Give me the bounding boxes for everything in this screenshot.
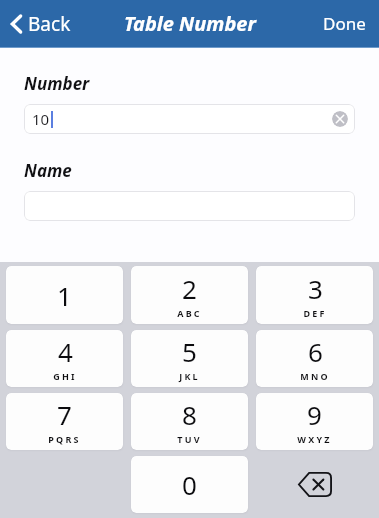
staticText: MNO	[300, 370, 330, 382]
button[interactable]: Back	[7, 7, 74, 41]
staticText: JKL	[179, 370, 200, 382]
staticText: 3	[308, 271, 323, 306]
button[interactable]: 4	[6, 330, 123, 387]
button[interactable]: Clear text	[332, 111, 348, 127]
staticText: 2	[182, 271, 197, 306]
button[interactable]: 8	[131, 393, 248, 450]
staticText: 7	[57, 397, 72, 432]
button[interactable]: 6	[256, 330, 373, 387]
staticText: DEF	[303, 307, 327, 319]
staticText: Name	[24, 159, 72, 182]
staticText: ABC	[177, 307, 202, 319]
staticText: 6	[308, 334, 323, 369]
staticText: WXYZ	[297, 433, 332, 445]
staticText: Number	[24, 72, 90, 95]
staticText: 5	[182, 334, 197, 369]
staticText: 4	[58, 334, 73, 369]
staticText: Back	[28, 11, 71, 37]
button[interactable]: 2	[131, 266, 248, 324]
button[interactable]: 7	[6, 393, 123, 450]
staticText: GHI	[53, 370, 77, 382]
staticText: 1	[57, 278, 72, 313]
staticText: PQRS	[48, 433, 81, 445]
button[interactable]: 5	[131, 330, 248, 387]
staticText: 9	[307, 397, 322, 432]
button[interactable]: Done	[319, 8, 370, 39]
staticText: Table Number	[124, 10, 256, 37]
button[interactable]	[24, 191, 355, 221]
staticText: 8	[182, 397, 197, 432]
staticText: 10	[32, 109, 50, 129]
button[interactable]: 3	[256, 266, 373, 324]
staticText: Done	[323, 12, 366, 35]
button[interactable]: 9	[256, 393, 373, 450]
button[interactable]: 0	[131, 456, 248, 513]
button[interactable]: Backspace	[256, 456, 373, 513]
button[interactable]: 1	[6, 266, 123, 324]
button[interactable]: 10	[24, 104, 355, 134]
staticText: 0	[182, 467, 197, 502]
staticText: TUV	[177, 433, 202, 445]
